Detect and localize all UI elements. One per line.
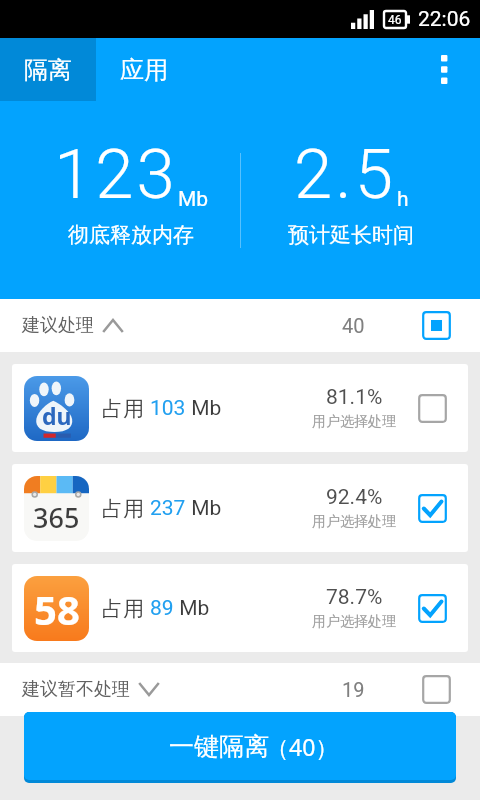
- staticText: du: [42, 400, 72, 431]
- staticText: 用户选择处理: [312, 413, 396, 431]
- staticText: 103: [150, 396, 186, 421]
- staticText: 占用: [102, 594, 150, 623]
- button[interactable]: 隔离: [0, 38, 96, 101]
- button[interactable]: 365: [12, 464, 468, 552]
- staticText: 建议处理: [22, 314, 94, 337]
- staticText: Mb: [186, 496, 222, 521]
- staticText: 隔离: [24, 55, 72, 85]
- staticText: h: [397, 187, 409, 212]
- staticText: 应用: [120, 55, 168, 85]
- staticText: 建议暂不处理: [22, 678, 130, 701]
- button[interactable]: Select: [422, 675, 451, 704]
- button[interactable]: More options: [408, 38, 480, 101]
- staticText: 123: [54, 134, 178, 215]
- button[interactable]: 建议暂不处理: [0, 663, 480, 716]
- staticText: 365: [33, 499, 80, 536]
- staticText: 92.4%: [326, 485, 383, 510]
- staticText: 一键隔离: [169, 731, 269, 762]
- staticText: 预计延长时间: [288, 222, 414, 248]
- button[interactable]: 58: [12, 564, 468, 652]
- staticText: 占用: [102, 494, 150, 523]
- staticText: 89: [150, 596, 174, 621]
- button[interactable]: Select: [422, 311, 451, 340]
- button[interactable]: 一键隔离: [24, 712, 456, 783]
- button[interactable]: Select: [418, 594, 447, 623]
- staticText: （40）: [266, 731, 339, 762]
- staticText: Mb: [178, 187, 209, 212]
- staticText: 彻底释放内存: [68, 222, 194, 248]
- staticText: 用户选择处理: [312, 613, 396, 631]
- staticText: 19: [342, 678, 365, 701]
- button[interactable]: Select: [418, 494, 447, 523]
- staticText: Mb: [186, 396, 222, 421]
- staticText: 46: [388, 13, 402, 27]
- staticText: 78.7%: [326, 585, 383, 610]
- staticText: 81.1%: [326, 385, 383, 410]
- staticText: 237: [150, 496, 186, 521]
- staticText: 占用: [102, 394, 150, 423]
- staticText: 40: [342, 314, 365, 337]
- staticText: Mb: [174, 596, 210, 621]
- button[interactable]: du: [12, 364, 468, 452]
- staticText: 22:06: [418, 7, 471, 32]
- staticText: 用户选择处理: [312, 513, 396, 531]
- button[interactable]: 应用: [96, 38, 192, 101]
- staticText: 58: [34, 582, 80, 636]
- button[interactable]: 建议处理: [0, 299, 480, 352]
- button[interactable]: Select: [418, 394, 447, 423]
- staticText: 2.5: [294, 134, 397, 215]
